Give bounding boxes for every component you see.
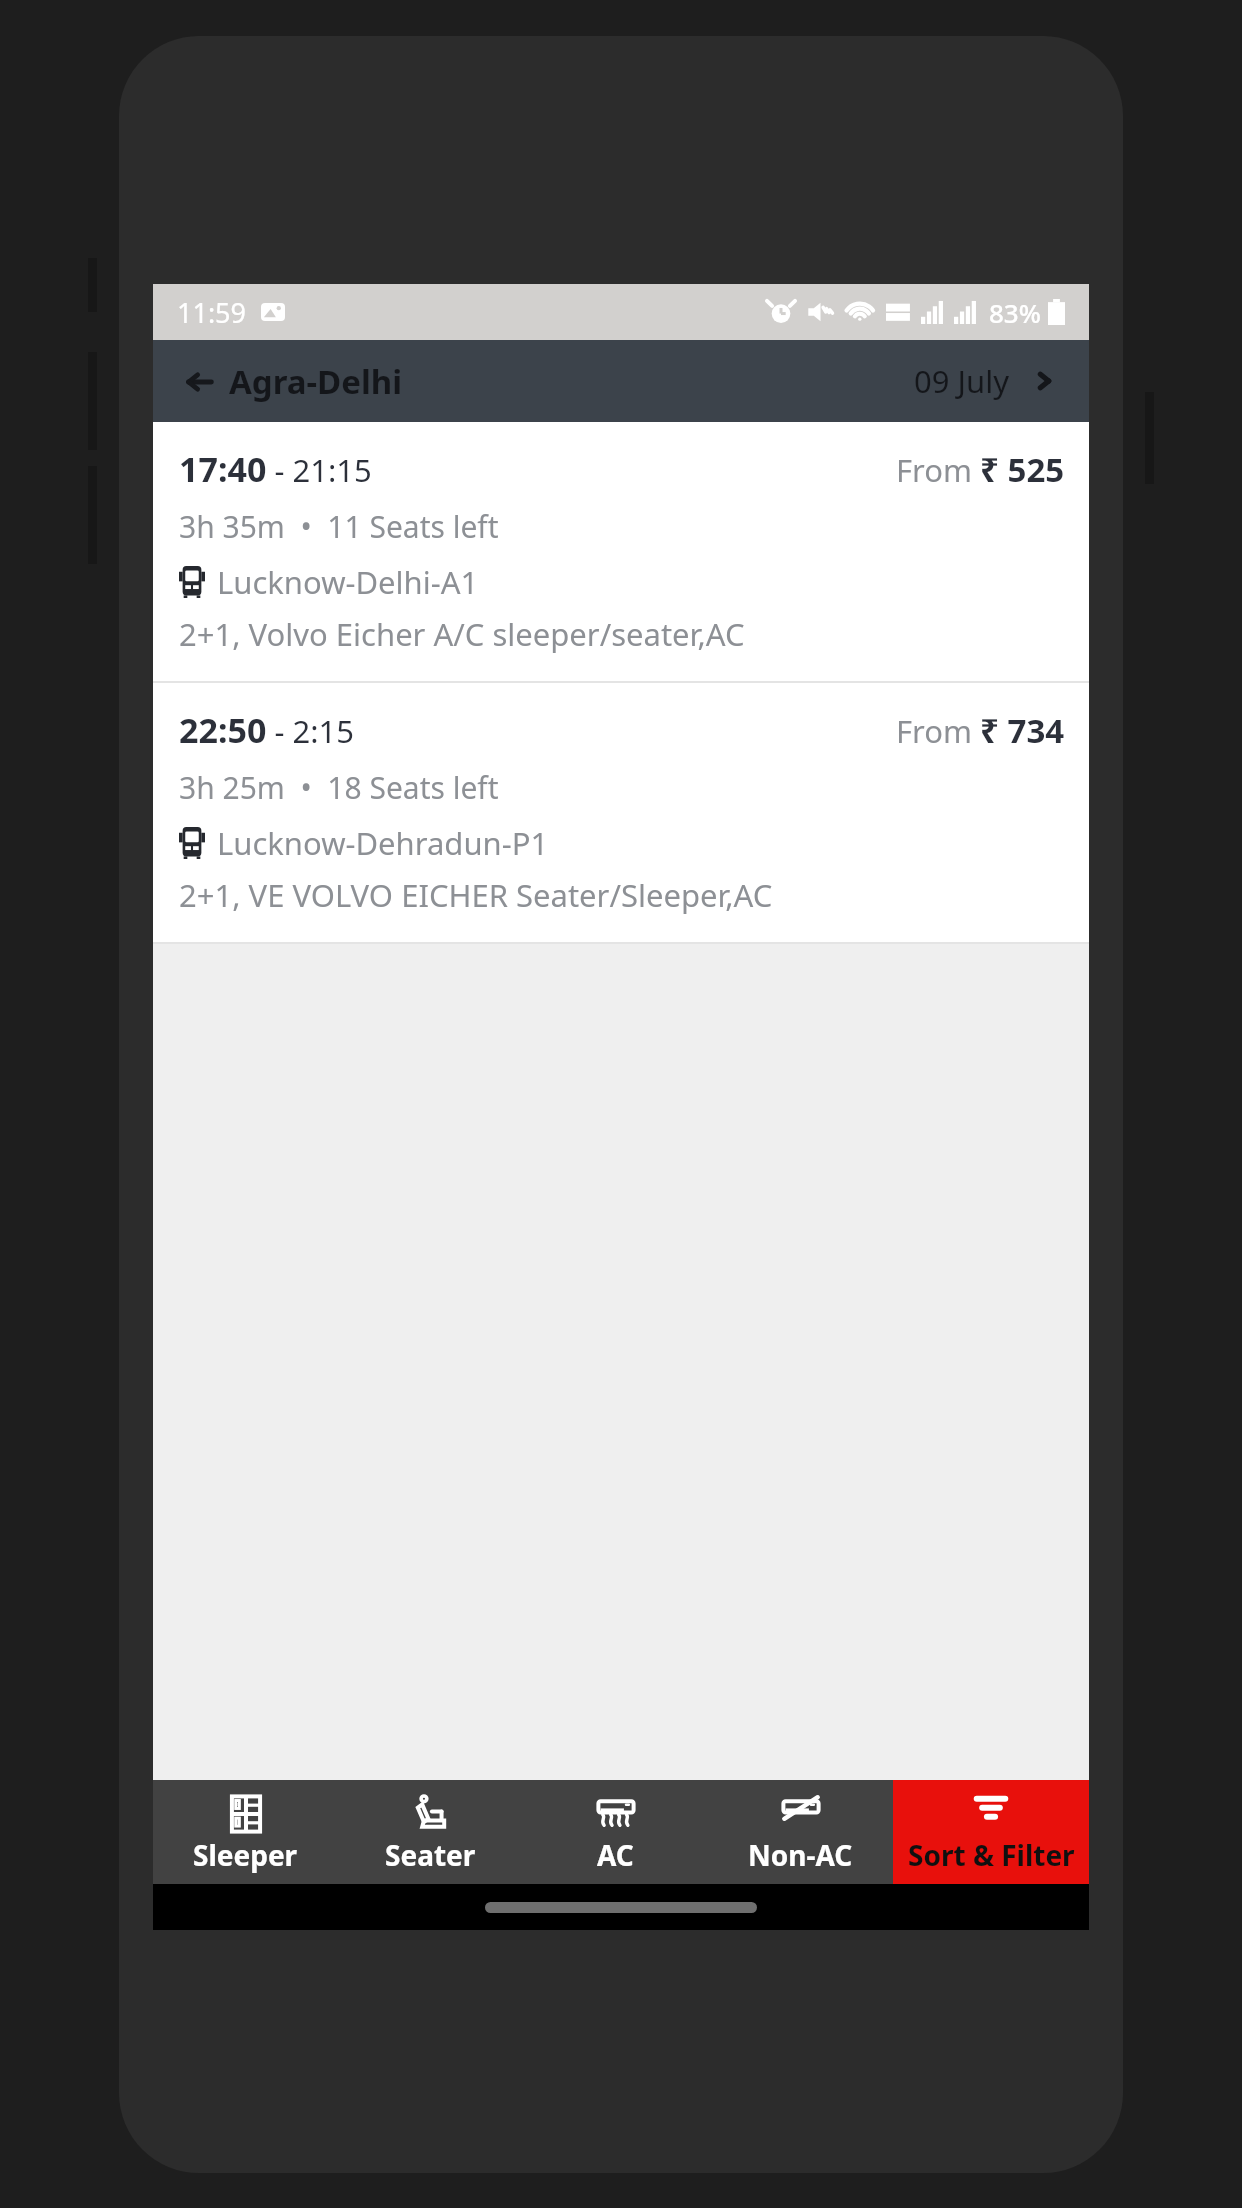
staticText: From ₹ 734 bbox=[896, 708, 1065, 753]
button[interactable]: Sort & Filter bbox=[893, 1780, 1089, 1884]
staticText: AC bbox=[597, 1836, 634, 1874]
staticText: 09 July bbox=[914, 360, 1009, 402]
button[interactable]: 09 July bbox=[910, 352, 1061, 410]
staticText: Non-AC bbox=[748, 1836, 853, 1874]
staticText: Seater bbox=[385, 1836, 476, 1874]
button[interactable]: Sleeper bbox=[153, 1780, 338, 1884]
staticText: From ₹ 525 bbox=[896, 447, 1065, 492]
button[interactable]: Non-AC bbox=[708, 1780, 893, 1884]
other: Back bbox=[185, 367, 215, 397]
staticText: 11:59 bbox=[177, 294, 247, 331]
staticText: 3h 25m • 18 Seats left bbox=[179, 767, 499, 808]
other: Next day bbox=[1031, 368, 1057, 394]
staticText: Lucknow-Dehradun-P1 bbox=[217, 822, 549, 864]
staticText: 2+1, Volvo Eicher A/C sleeper/seater,AC bbox=[179, 613, 745, 655]
staticText: 22:50 - 2:15 bbox=[179, 707, 354, 753]
staticText: 3h 35m • 11 Seats left bbox=[179, 506, 499, 547]
button[interactable]: Back bbox=[181, 351, 407, 412]
button[interactable]: 17:40 - 21:15 bbox=[153, 422, 1089, 681]
button[interactable]: 22:50 - 2:15 bbox=[153, 683, 1089, 942]
staticText: Sleeper bbox=[193, 1836, 298, 1874]
staticText: Agra-Delhi bbox=[229, 359, 403, 404]
button[interactable]: Seater bbox=[338, 1780, 523, 1884]
staticText: Sort & Filter bbox=[908, 1836, 1075, 1874]
staticText: 83% bbox=[989, 295, 1041, 330]
staticText: 17:40 - 21:15 bbox=[179, 446, 372, 492]
staticText: 2+1, VE VOLVO EICHER Seater/Sleeper,AC bbox=[179, 874, 773, 916]
staticText: Lucknow-Delhi-A1 bbox=[217, 561, 479, 603]
button[interactable]: AC bbox=[523, 1780, 708, 1884]
